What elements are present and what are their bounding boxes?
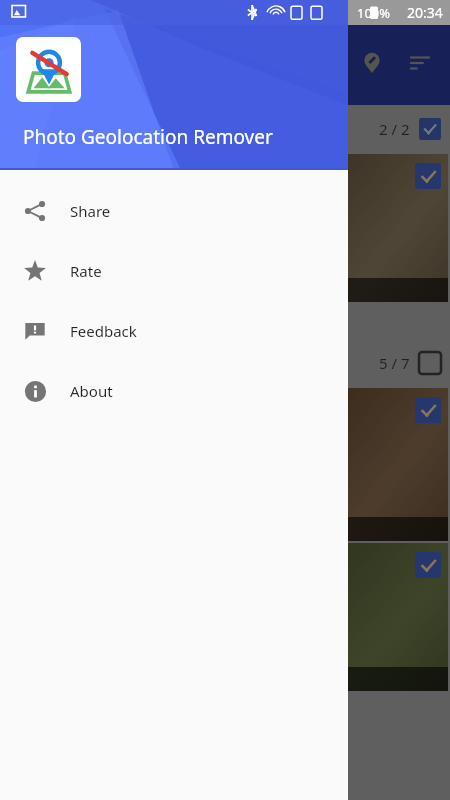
button[interactable]: About [0, 361, 348, 421]
staticText: 20:34 [407, 3, 443, 22]
button[interactable]: 2 / 2 [0, 105, 450, 153]
button[interactable]: Share [0, 181, 348, 241]
button[interactable]: Select photo [2, 388, 448, 541]
button[interactable]: 5 / 7 [0, 339, 450, 387]
staticText: Share [70, 201, 111, 221]
button[interactable]: Feedback [0, 301, 348, 361]
button[interactable]: Select photo [414, 396, 442, 424]
button[interactable]: Location [348, 39, 396, 87]
staticText: 2 / 2 [379, 119, 410, 139]
button[interactable]: Select group [418, 117, 442, 141]
button[interactable]: Rate [0, 241, 348, 301]
button[interactable]: Select photo [2, 543, 448, 691]
button[interactable]: Select photo [414, 551, 442, 579]
button[interactable]: Select photo [414, 162, 442, 190]
staticText: Photo Geolocation Remover [23, 124, 273, 150]
staticText: Rate [70, 261, 102, 281]
button[interactable]: Select group [418, 351, 442, 375]
staticText: 5 / 7 [379, 353, 410, 373]
button[interactable]: Select photo [2, 154, 448, 302]
staticText: 100% [357, 4, 391, 22]
staticText: Feedback [70, 321, 137, 341]
staticText: About [70, 381, 113, 401]
button[interactable]: Sort [396, 39, 444, 87]
